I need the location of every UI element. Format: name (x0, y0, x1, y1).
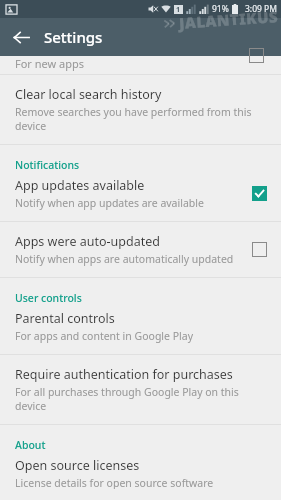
staticText: App updates available (15, 177, 145, 194)
staticText: For all purchases through Google Play on… (15, 385, 267, 413)
staticText: For new apps (15, 56, 85, 71)
button[interactable]: Parental controls (0, 305, 281, 354)
staticText: Parental controls (15, 310, 115, 327)
button[interactable]: Require authentication for purchases (0, 355, 281, 424)
staticText: Clear local search history (15, 86, 162, 103)
staticText: Apps were auto-updated (15, 233, 160, 250)
staticText: 91% (212, 3, 229, 15)
button[interactable]: Clear local search history (0, 75, 281, 144)
staticText: User controls (15, 291, 82, 305)
button[interactable]: Apps were auto-updated (0, 222, 281, 277)
staticText: Notify when apps are automatically updat… (15, 252, 234, 266)
staticText: 1 (176, 5, 181, 14)
button[interactable]: Open source licenses (0, 452, 281, 500)
staticText: About (15, 438, 46, 452)
button[interactable]: App updates available (0, 172, 281, 221)
staticText: 3:09 PM (245, 3, 277, 15)
staticText: For apps and content in Google Play (15, 329, 194, 343)
staticText: License details for open source software (15, 476, 214, 489)
staticText: Remove searches you have performed from … (15, 105, 267, 133)
staticText: Open source licenses (15, 457, 140, 474)
staticText: Notify when app updates are available (15, 196, 204, 210)
button[interactable]: For new apps (0, 56, 281, 74)
staticText: Settings (44, 27, 103, 47)
button[interactable]: Back (8, 24, 34, 50)
staticText: Require authentication for purchases (15, 366, 233, 383)
staticText: Notifications (15, 158, 80, 172)
staticText: JALANTIKUS (178, 6, 280, 33)
